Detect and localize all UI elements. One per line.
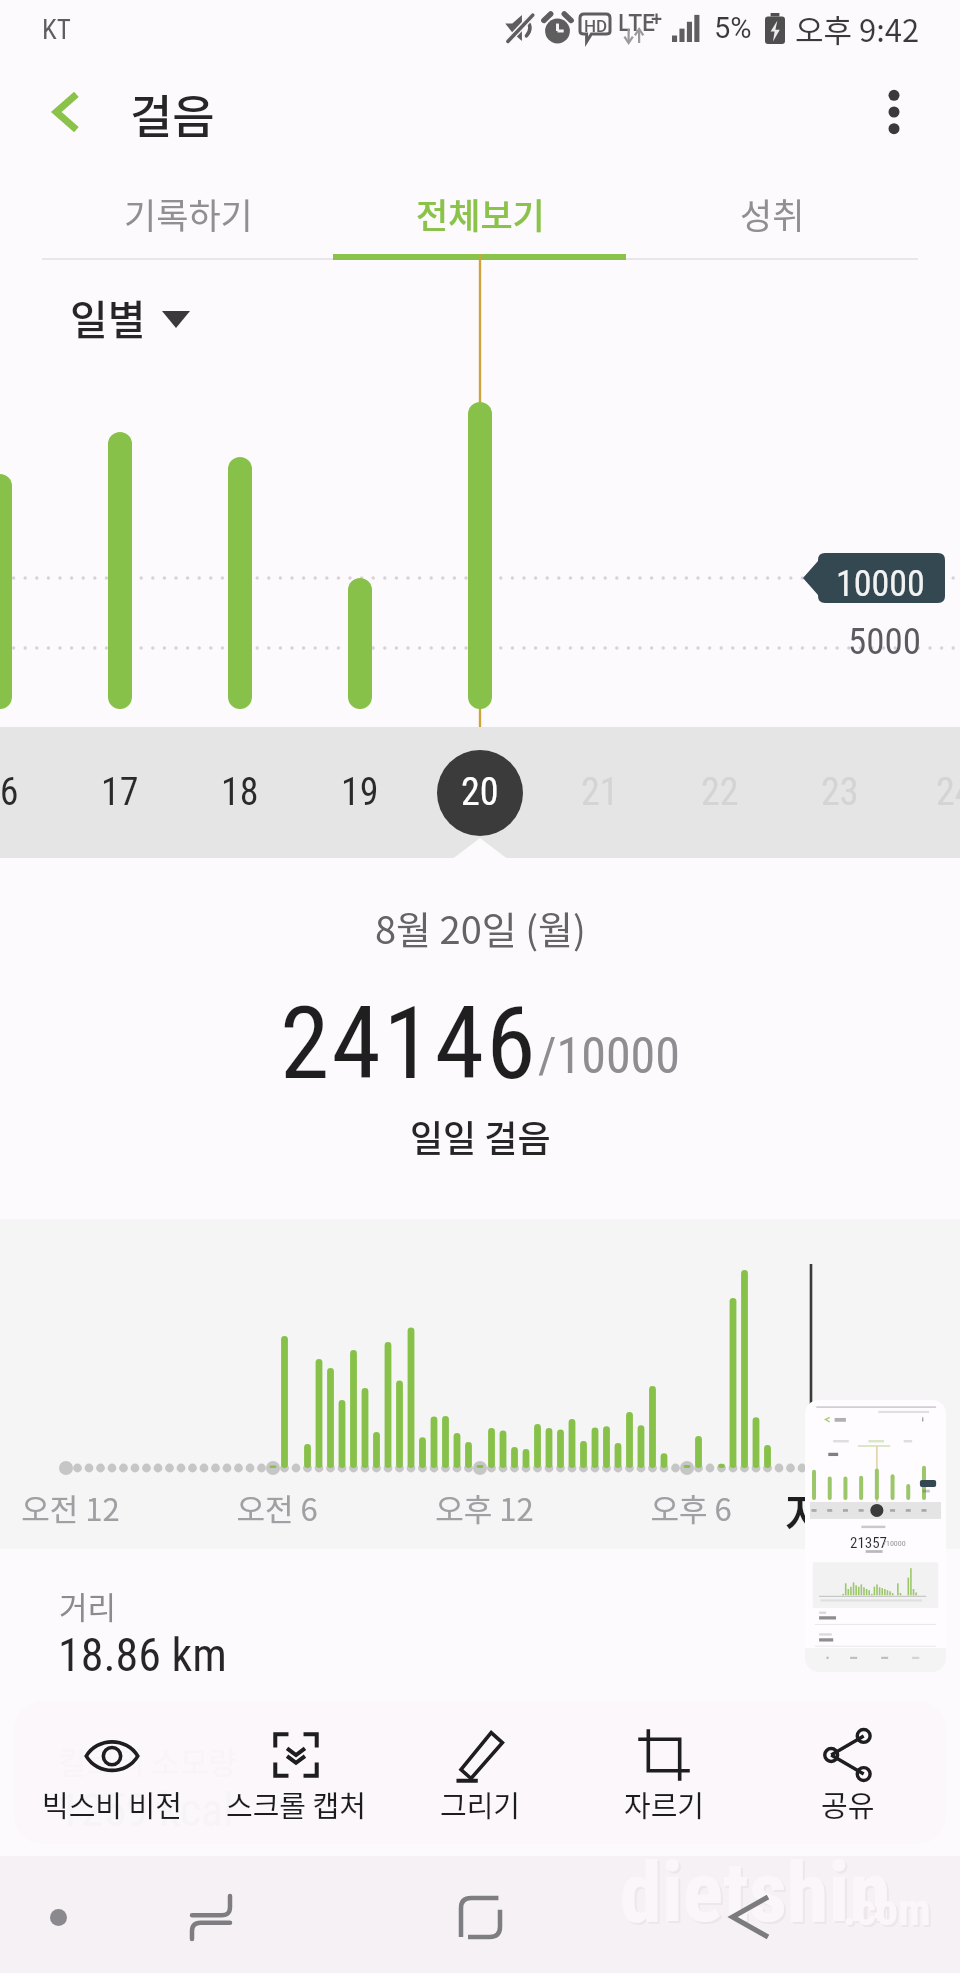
- staticText: dietshin: [622, 1845, 893, 1943]
- button[interactable]: 성취: [626, 165, 918, 259]
- staticText: 5%: [714, 11, 752, 45]
- staticText: 오전 6: [236, 1485, 318, 1530]
- button[interactable]: More: [12, 1871, 104, 1963]
- button[interactable]: Back: [20, 64, 116, 160]
- button[interactable]: 기록하기: [42, 165, 334, 259]
- staticText: 20: [461, 770, 499, 815]
- staticText: 스크롤 캡처: [226, 1783, 366, 1825]
- staticText: HD: [584, 16, 608, 36]
- staticText: 칼로리 소모량: [59, 1738, 238, 1783]
- staticText: +: [651, 6, 663, 29]
- staticText: 공유: [821, 1783, 875, 1825]
- button[interactable]: 16: [0, 727, 60, 858]
- staticText: 일일 걸음: [410, 1110, 551, 1162]
- staticText: 자정: [785, 1477, 874, 1547]
- button[interactable]: Recents: [165, 1871, 257, 1963]
- staticText: 22: [701, 770, 739, 815]
- button[interactable]: 17: [60, 727, 180, 858]
- button[interactable]: 일별: [70, 287, 190, 346]
- button[interactable]: 전체보기: [334, 165, 626, 259]
- button[interactable]: 19: [300, 727, 420, 858]
- button[interactable]: Screenshot preview: [805, 1400, 946, 1672]
- staticText: dietshin: [620, 1843, 891, 1941]
- staticText: 오후 12: [435, 1485, 534, 1530]
- staticText: 24: [936, 770, 960, 815]
- staticText: 5000: [848, 620, 922, 663]
- staticText: 17: [101, 770, 139, 815]
- staticText: LTE: [618, 10, 656, 37]
- staticText: 19: [341, 770, 379, 815]
- staticText: 1259 kcal: [58, 1783, 234, 1837]
- staticText: 18.86 km: [58, 1628, 227, 1682]
- button[interactable]: 18: [180, 727, 300, 858]
- button[interactable]: 빅스비 비전: [26, 1701, 198, 1825]
- button[interactable]: More options: [846, 64, 942, 160]
- staticText: KT: [42, 14, 71, 46]
- staticText: 기록하기: [124, 188, 253, 239]
- button[interactable]: 자르기: [578, 1701, 750, 1825]
- staticText: 빅스비 비전: [42, 1783, 182, 1825]
- staticText: 오후 9:42: [795, 6, 920, 51]
- staticText: 23: [821, 770, 859, 815]
- staticText: 걸음: [130, 80, 215, 147]
- staticText: .com: [845, 1886, 933, 1938]
- staticText: 자르기: [624, 1783, 705, 1825]
- staticText: 오전 12: [21, 1485, 120, 1530]
- staticText: 10000: [836, 563, 925, 605]
- staticText: 21357: [850, 1534, 888, 1552]
- button[interactable]: Home: [434, 1871, 526, 1963]
- staticText: /10000: [538, 1027, 680, 1086]
- staticText: 거리: [59, 1583, 117, 1628]
- staticText: 전체보기: [416, 188, 545, 239]
- staticText: 16: [0, 770, 19, 815]
- staticText: 일별: [70, 287, 146, 346]
- staticText: 성취: [740, 188, 805, 239]
- button[interactable]: 스크롤 캡처: [210, 1701, 382, 1825]
- staticText: 18: [221, 770, 259, 815]
- button[interactable]: Back: [703, 1871, 795, 1963]
- staticText: 24146: [280, 985, 538, 1102]
- staticText: .com: [843, 1884, 931, 1936]
- staticText: 그리기: [440, 1783, 521, 1825]
- button[interactable]: 공유: [762, 1701, 934, 1825]
- button[interactable]: 20: [420, 727, 540, 858]
- staticText: 21: [581, 770, 619, 815]
- button[interactable]: 그리기: [394, 1701, 566, 1825]
- staticText: /10000: [883, 1539, 906, 1548]
- staticText: 오후 6: [650, 1485, 732, 1530]
- staticText: 8월 20일 (월): [375, 900, 586, 955]
